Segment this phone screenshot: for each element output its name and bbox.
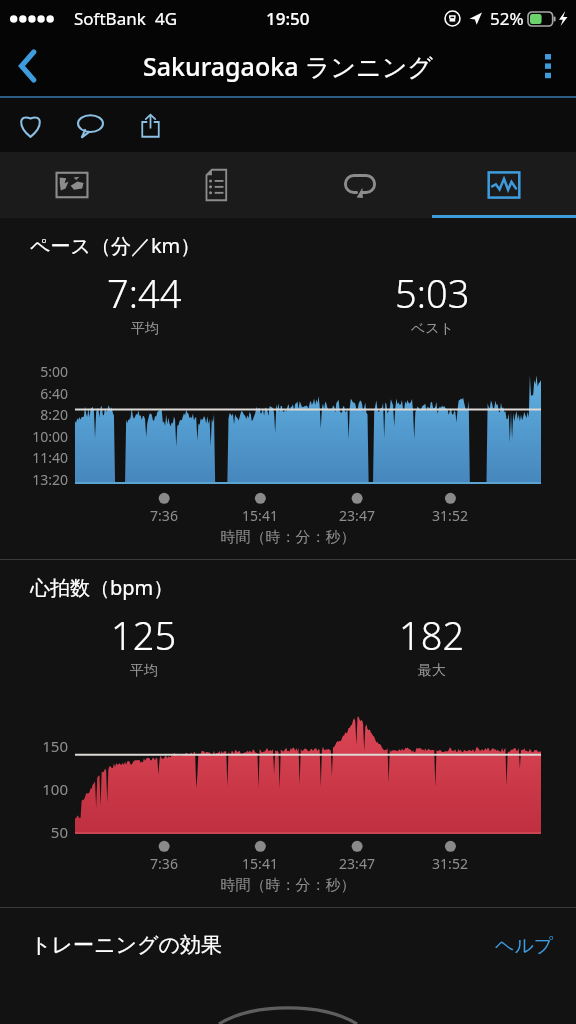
staticText: 31:52 bbox=[426, 854, 474, 873]
staticText: 23:47 bbox=[333, 854, 381, 873]
staticText: 7:36 bbox=[140, 854, 188, 873]
staticText: ベスト bbox=[411, 320, 454, 338]
button[interactable]: Comment bbox=[60, 98, 120, 152]
staticText: トレーニングの効果 bbox=[30, 932, 222, 958]
button[interactable]: Map bbox=[0, 152, 144, 218]
staticText: 平均 bbox=[130, 662, 158, 680]
staticText: 15:41 bbox=[236, 854, 284, 873]
button[interactable]: トレーニングの効果 bbox=[0, 908, 576, 1024]
staticText: 最大 bbox=[418, 662, 446, 680]
staticText: 19:50 bbox=[266, 7, 310, 30]
button[interactable]: Share bbox=[120, 98, 180, 152]
button[interactable]: Like bbox=[0, 98, 60, 152]
button[interactable]: More options bbox=[520, 36, 576, 96]
button[interactable]: Laps bbox=[288, 152, 432, 218]
staticText: 8:20 bbox=[2, 405, 68, 424]
staticText: 時間（時：分：秒） bbox=[0, 876, 576, 895]
staticText: 125 bbox=[111, 609, 177, 661]
button[interactable]: Charts bbox=[432, 152, 576, 218]
staticText: 5:00 bbox=[2, 362, 68, 381]
staticText: ペース（分／km） bbox=[30, 232, 201, 259]
staticText: 31:52 bbox=[426, 506, 474, 525]
staticText: 平均 bbox=[131, 320, 159, 338]
staticText: 6:40 bbox=[2, 384, 68, 403]
staticText: 100 bbox=[2, 779, 68, 799]
staticText: 時間（時：分：秒） bbox=[0, 528, 576, 547]
staticText: 52% bbox=[490, 7, 524, 30]
staticText: 心拍数（bpm） bbox=[30, 574, 174, 601]
staticText: 7:44 bbox=[107, 267, 182, 319]
staticText: 50 bbox=[2, 822, 68, 842]
staticText: 150 bbox=[2, 736, 68, 756]
staticText: 4G bbox=[155, 7, 178, 30]
staticText: 182 bbox=[399, 609, 465, 661]
staticText: 23:47 bbox=[333, 506, 381, 525]
button[interactable]: Details bbox=[144, 152, 288, 218]
staticText: 15:41 bbox=[236, 506, 284, 525]
staticText: 10:00 bbox=[2, 427, 68, 446]
staticText: 5:03 bbox=[395, 267, 470, 319]
staticText: Sakuragaoka ランニング bbox=[143, 49, 433, 83]
staticText: ヘルプ bbox=[495, 934, 554, 958]
staticText: SoftBank bbox=[74, 7, 146, 30]
staticText: 13:20 bbox=[2, 470, 68, 489]
button[interactable]: Back bbox=[0, 36, 56, 96]
staticText: 11:40 bbox=[2, 448, 68, 467]
staticText: 7:36 bbox=[140, 506, 188, 525]
